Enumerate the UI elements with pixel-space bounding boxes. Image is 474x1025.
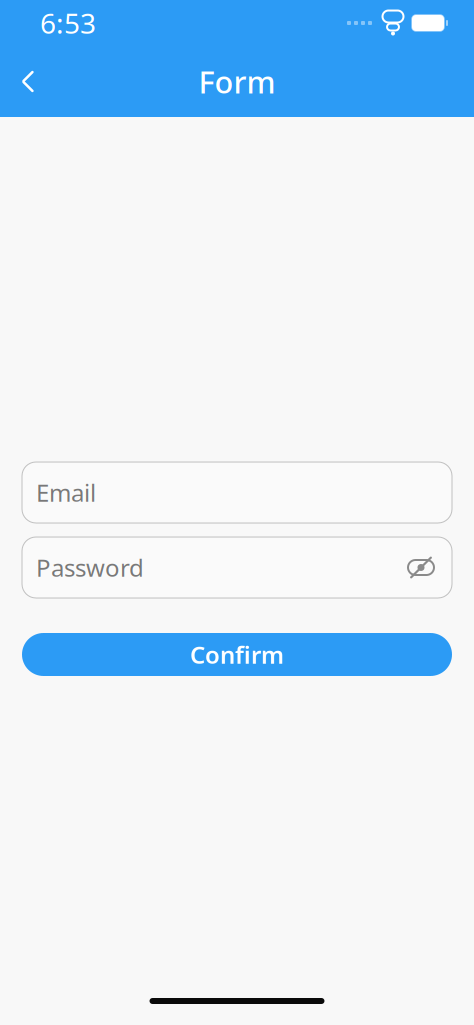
button[interactable]: Confirm <box>22 633 452 676</box>
staticText: Confirm <box>190 639 284 670</box>
staticText: Email <box>36 477 96 508</box>
staticText: 6:53 <box>40 4 96 42</box>
button[interactable]: Back <box>0 53 56 109</box>
staticText: Form <box>198 61 275 102</box>
staticText: Password <box>36 552 144 583</box>
button[interactable]: Password <box>22 537 452 598</box>
button[interactable]: Email <box>22 462 452 523</box>
